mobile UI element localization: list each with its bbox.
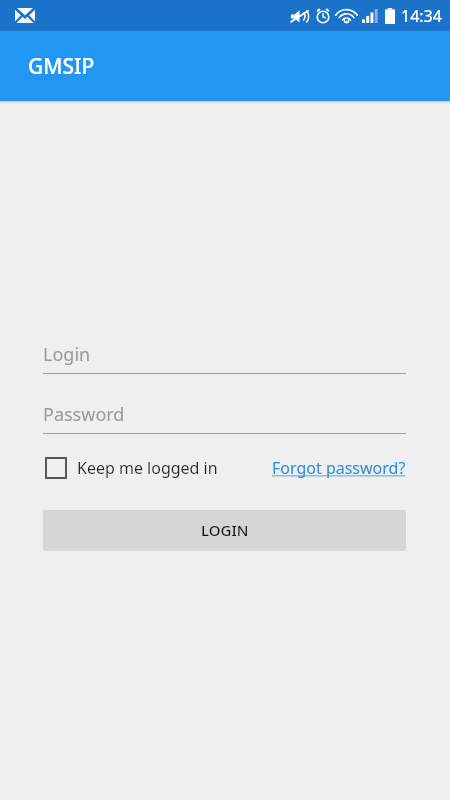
staticText: Login (43, 342, 91, 367)
staticText: GMSIP (28, 52, 95, 81)
staticText: Keep me logged in (77, 457, 218, 479)
button[interactable]: Keep me logged in (43, 454, 220, 482)
button[interactable]: Forgot password? (272, 453, 406, 483)
button[interactable]: Password (43, 402, 406, 434)
button[interactable]: Login (43, 342, 406, 374)
staticText: Password (43, 402, 125, 427)
staticText: LOGIN (201, 520, 249, 540)
button[interactable]: LOGIN (43, 510, 406, 549)
staticText: 14:34 (401, 5, 442, 27)
